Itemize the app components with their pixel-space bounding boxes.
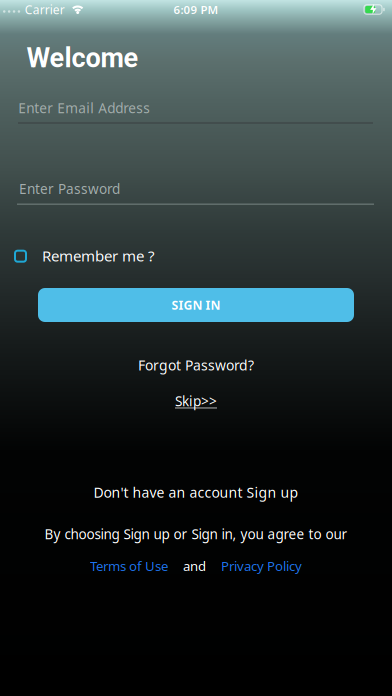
- staticText: Enter Password: [19, 179, 120, 198]
- button[interactable]: Forgot Password?: [86, 353, 306, 377]
- button[interactable]: Enter Password: [0, 182, 392, 212]
- staticText: SIGN IN: [171, 297, 220, 313]
- staticText: Remember me ?: [42, 245, 155, 266]
- button[interactable]: Enter Email Address: [0, 101, 392, 131]
- staticText: Privacy Policy: [221, 557, 302, 575]
- button[interactable]: Privacy Policy: [221, 557, 302, 575]
- staticText: Enter Email Address: [18, 99, 150, 117]
- button[interactable]: Remember me ?: [0, 245, 392, 267]
- staticText: Forgot Password?: [138, 355, 254, 374]
- staticText: Terms of Use: [90, 557, 168, 575]
- staticText: Don't have an account Sign up: [93, 483, 298, 502]
- staticText: 6:09 PM: [173, 2, 218, 17]
- staticText: By choosing Sign up or Sign in, you agre…: [44, 525, 347, 543]
- button[interactable]: Terms of Use: [90, 557, 168, 575]
- staticText: and: [183, 557, 206, 575]
- staticText: Carrier: [25, 1, 65, 18]
- button[interactable]: Don't have an account Sign up: [46, 480, 346, 504]
- button[interactable]: Skip>>: [136, 389, 256, 413]
- button[interactable]: SIGN IN: [38, 288, 354, 322]
- staticText: Skip>>: [175, 392, 217, 410]
- staticText: Welcome: [26, 42, 138, 74]
